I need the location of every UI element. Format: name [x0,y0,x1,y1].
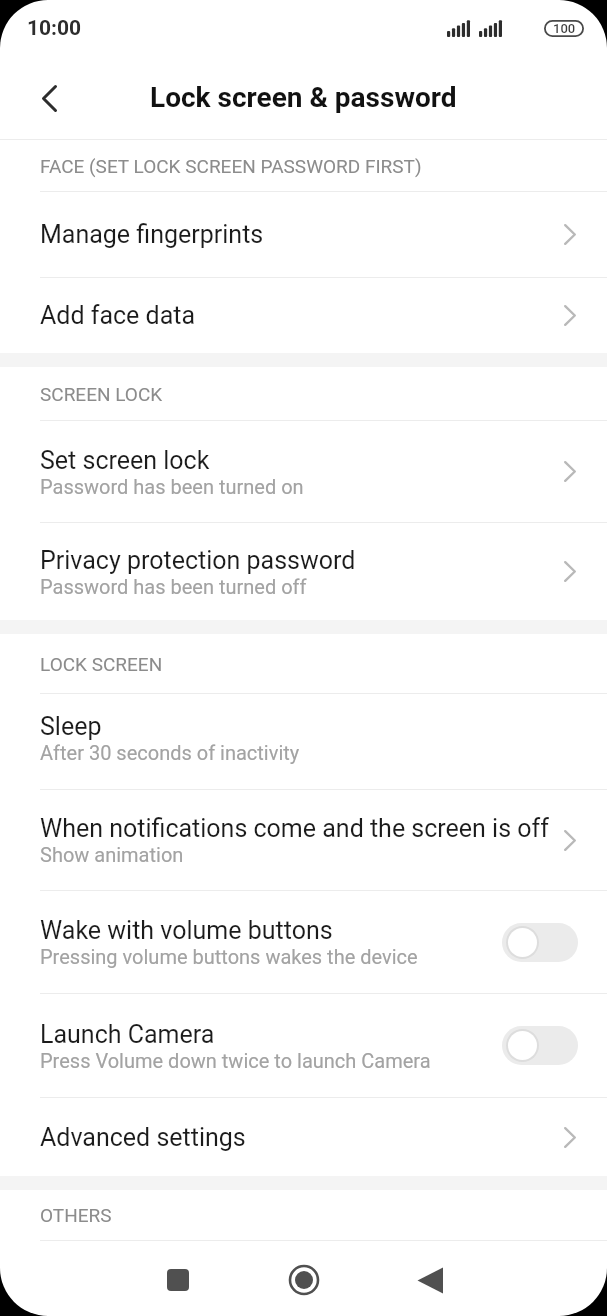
staticText: Advanced settings [40,1123,246,1152]
staticText: Show animation [40,843,184,866]
staticText: Password has been turned on [40,475,304,498]
button[interactable]: Launch Camera [0,994,607,1097]
button[interactable] [502,1026,578,1065]
staticText: 10:00 [27,16,82,41]
button[interactable] [34,83,64,113]
staticText: Sleep [40,712,102,741]
staticText: FACE (SET LOCK SCREEN PASSWORD FIRST) [40,155,422,177]
staticText: When notifications come and the screen i… [40,814,549,843]
staticText: SCREEN LOCK [40,383,163,405]
button[interactable] [156,1258,200,1302]
button[interactable]: Privacy protection password [0,523,607,620]
staticText: OTHERS [40,1204,112,1226]
button[interactable]: Manage fingerprints [0,192,607,277]
staticText: Pressing volume buttons wakes the device [40,945,418,968]
staticText: Set screen lock [40,446,210,475]
button[interactable]: Set screen lock [0,421,607,522]
staticText: Privacy protection password [40,546,356,575]
staticText: 100 [553,21,576,36]
staticText: Manage fingerprints [40,220,264,249]
button[interactable]: Add face data [0,278,607,353]
staticText: Wake with volume buttons [40,916,333,945]
button[interactable] [282,1258,326,1302]
button[interactable]: Wake with volume buttons [0,891,607,993]
staticText: Lock screen & password [150,81,457,114]
staticText: Launch Camera [40,1020,215,1049]
staticText: After 30 seconds of inactivity [40,741,300,764]
button[interactable]: Advanced settings [0,1098,607,1176]
button[interactable] [502,923,578,962]
staticText: Password has been turned off [40,575,307,598]
button[interactable] [408,1258,452,1302]
staticText: Press Volume down twice to launch Camera [40,1049,431,1072]
button[interactable]: Sleep [0,694,607,789]
staticText: LOCK SCREEN [40,653,163,675]
button[interactable]: When notifications come and the screen i… [0,790,607,890]
staticText: Add face data [40,301,196,330]
